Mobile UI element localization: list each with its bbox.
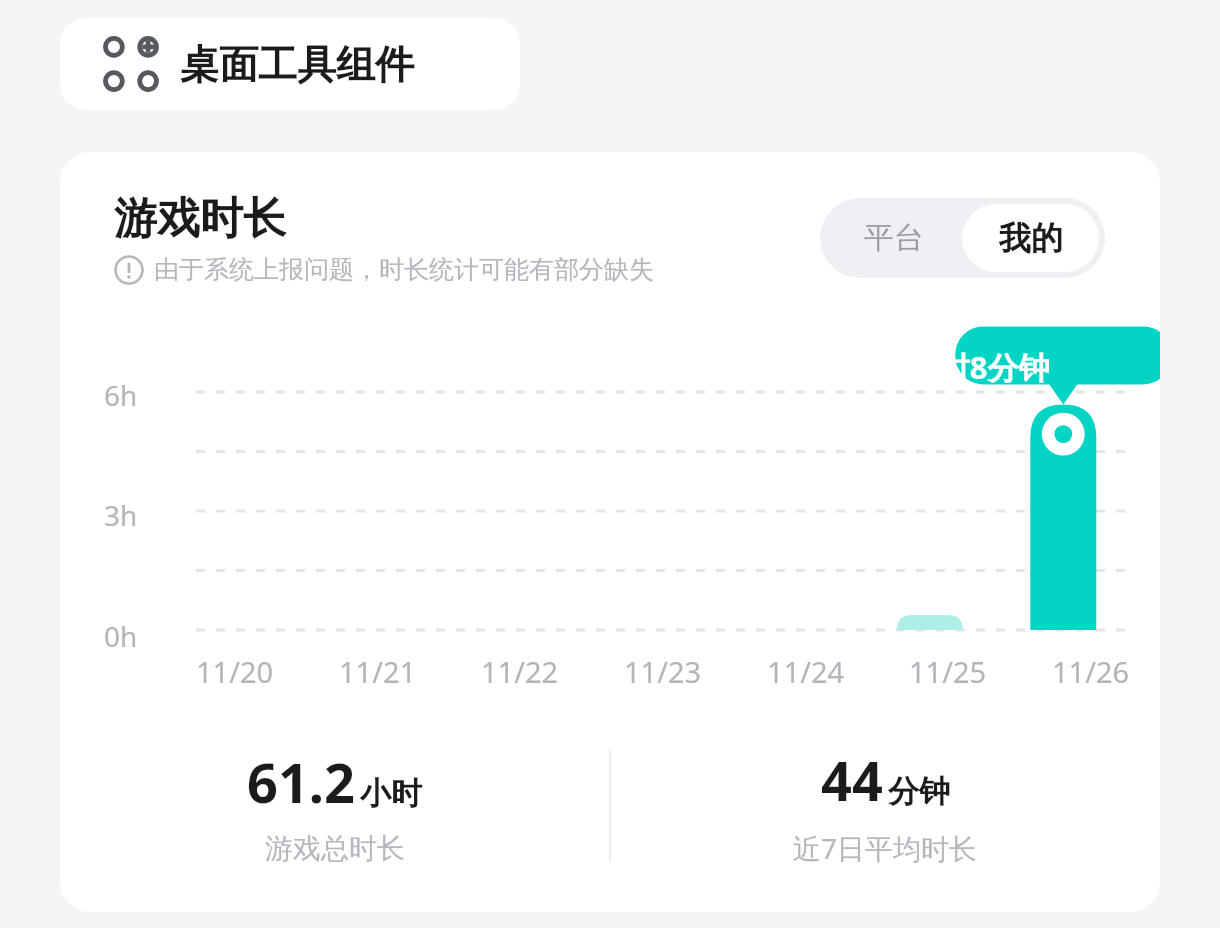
staticText: 11/23 <box>624 652 702 691</box>
staticText: 小时 <box>360 774 422 813</box>
staticText: 61.2 <box>247 745 355 819</box>
button[interactable]: 平台 <box>826 204 962 272</box>
staticText: 11/24 <box>767 652 845 691</box>
button[interactable]: 44 <box>611 743 1160 867</box>
staticText: 由于系统上报问题，时长统计可能有部分缺失 <box>154 254 654 285</box>
staticText: 近7日平均时长 <box>793 829 978 867</box>
staticText: 桌面工具组件 <box>180 40 414 89</box>
staticText: 6h <box>104 376 138 414</box>
button[interactable]: 61.2 <box>60 745 609 866</box>
staticText: 44 <box>821 743 883 817</box>
staticText: 3h <box>104 496 138 534</box>
staticText: 11/22 <box>481 652 559 691</box>
staticText: 分钟 <box>888 772 950 811</box>
staticText: 游戏时长 <box>114 192 286 246</box>
other: Widgets <box>102 35 160 93</box>
button[interactable]: 我的 <box>962 204 1099 272</box>
staticText: 11/25 <box>909 652 987 691</box>
staticText: 游戏总时长 <box>265 831 405 866</box>
staticText: 平台 <box>864 219 924 257</box>
staticText: 11/26 <box>1052 652 1130 691</box>
staticText: 11/20 <box>196 652 274 691</box>
staticText: 5小时8分钟 <box>890 346 1050 388</box>
staticText: 我的 <box>999 218 1063 258</box>
staticText: 0h <box>104 617 138 655</box>
button[interactable]: Widgets <box>60 18 520 110</box>
staticText: 11/21 <box>339 652 417 691</box>
